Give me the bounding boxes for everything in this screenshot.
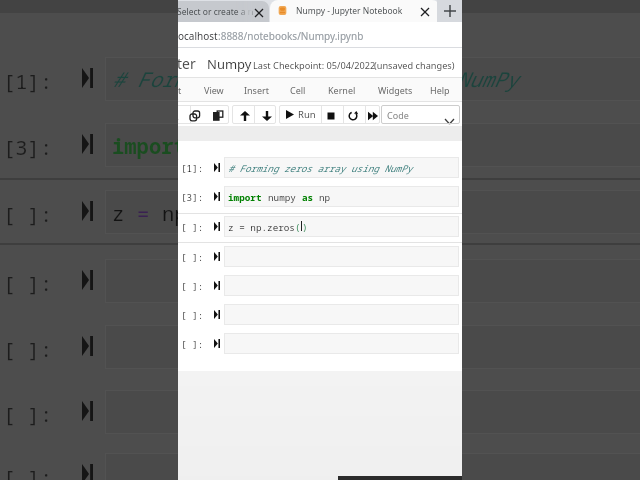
button[interactable]: View — [202, 79, 226, 100]
button[interactable]: [ ]: — [178, 275, 462, 297]
button[interactable]: [ ]: — [178, 304, 462, 326]
button[interactable]: Help — [428, 79, 452, 100]
staticText: t — [178, 84, 182, 96]
button[interactable]: [ ]: — [178, 216, 462, 238]
staticText: [ ]: — [3, 335, 53, 363]
button[interactable]: Select or create a n — [178, 1, 269, 22]
staticText: Select or create a n — [178, 6, 253, 18]
staticText: [ ]: — [3, 463, 53, 480]
staticText: (unsaved changes) — [374, 59, 455, 72]
staticText: [ ]: — [3, 400, 53, 428]
staticText: Cell — [290, 84, 306, 96]
staticText: Insert — [244, 84, 269, 96]
staticText: ocalhost — [178, 29, 218, 43]
staticText: Kernel — [328, 84, 356, 96]
staticText: as — [273, 132, 310, 160]
button[interactable]: [1]: — [178, 157, 462, 179]
staticText: [ ]: — [3, 269, 53, 297]
staticText: [3]: — [181, 191, 204, 204]
staticText: [ ]: — [3, 200, 53, 228]
staticText: ( — [295, 221, 301, 234]
staticText: numpy — [199, 132, 273, 160]
staticText: import — [112, 132, 199, 160]
button[interactable]: Stop — [322, 108, 339, 123]
button[interactable]: Restart and run all — [364, 108, 381, 123]
button[interactable]: Code — [381, 105, 460, 124]
staticText: ter — [178, 54, 196, 73]
staticText: :8888/notebooks/Numpy.ipynb — [218, 29, 364, 43]
staticText: import — [228, 191, 268, 204]
button[interactable]: [ ]: — [178, 333, 462, 355]
staticText: [ ]: — [181, 280, 204, 293]
staticText: Last Checkpoint: 05/04/2022 — [253, 59, 376, 72]
button[interactable]: Run — [280, 106, 322, 123]
staticText: as — [302, 191, 319, 204]
button[interactable]: Numpy - Jupyter Notebook — [270, 0, 440, 22]
staticText: [ ]: — [181, 251, 204, 264]
button[interactable]: Move down — [258, 108, 275, 123]
button[interactable]: Move up — [236, 108, 253, 123]
button[interactable]: Widgets — [376, 79, 415, 100]
staticText: [ ]: — [181, 309, 204, 322]
staticText: View — [204, 84, 224, 96]
staticText: ) — [302, 221, 308, 234]
button[interactable]: [ ]: — [178, 246, 462, 268]
staticText: Numpy - Jupyter Notebook — [296, 5, 403, 17]
staticText: Help — [430, 84, 450, 96]
button[interactable]: Close tab — [421, 8, 429, 16]
staticText: Code — [387, 109, 409, 121]
button[interactable]: Close tab — [255, 9, 263, 17]
staticText: z = np.zeros — [228, 221, 295, 234]
staticText: # Forming zeros array using NumPy — [228, 162, 413, 175]
staticText: [ ]: — [181, 338, 204, 351]
staticText: [1]: — [3, 67, 53, 95]
staticText: numpy — [268, 191, 302, 204]
staticText: np.zeros() — [162, 199, 285, 227]
button[interactable]: Insert — [242, 79, 271, 100]
staticText: [3]: — [3, 133, 53, 161]
staticText: z — [112, 199, 137, 227]
button[interactable]: Restart kernel — [344, 108, 361, 123]
staticText: = — [137, 199, 162, 227]
staticText: # Forming zeros array using NumPy — [112, 65, 518, 93]
button[interactable]: [3]: — [178, 186, 462, 208]
button[interactable]: Kernel — [326, 79, 358, 100]
staticText: [ ]: — [181, 221, 204, 234]
button[interactable]: New tab — [437, 0, 462, 22]
button[interactable]: Copy — [186, 108, 203, 123]
staticText: np — [310, 132, 335, 160]
staticText: Run — [298, 108, 316, 121]
button[interactable]: Cell — [288, 79, 308, 100]
button[interactable]: Cut — [178, 108, 181, 123]
staticText: Numpy — [207, 55, 252, 73]
staticText: Widgets — [378, 84, 413, 96]
button[interactable]: Paste — [209, 108, 226, 123]
staticText: np — [319, 191, 331, 204]
staticText: [1]: — [181, 162, 204, 175]
